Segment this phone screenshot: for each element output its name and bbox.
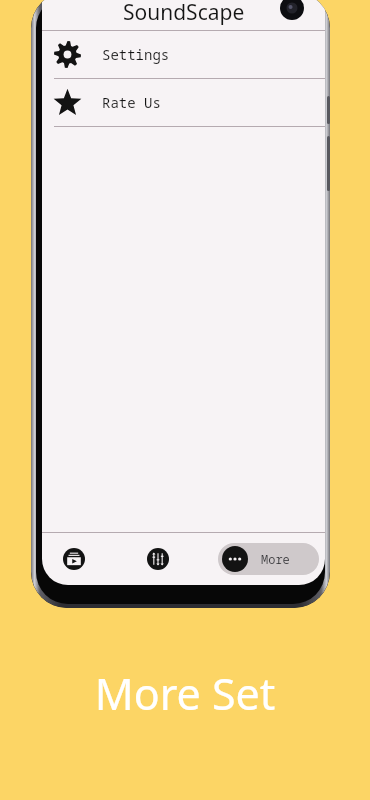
button[interactable]: More	[218, 543, 319, 575]
staticText: SoundScape	[123, 0, 245, 27]
button[interactable]: Equalizer	[132, 533, 184, 585]
staticText: More	[261, 551, 290, 567]
button[interactable]: Rate Us	[42, 79, 325, 126]
staticText: More Set	[0, 664, 370, 723]
staticText: Settings	[102, 45, 170, 64]
button[interactable]: Settings	[42, 31, 325, 78]
button[interactable]: Library	[48, 533, 100, 585]
staticText: Rate Us	[102, 93, 161, 112]
